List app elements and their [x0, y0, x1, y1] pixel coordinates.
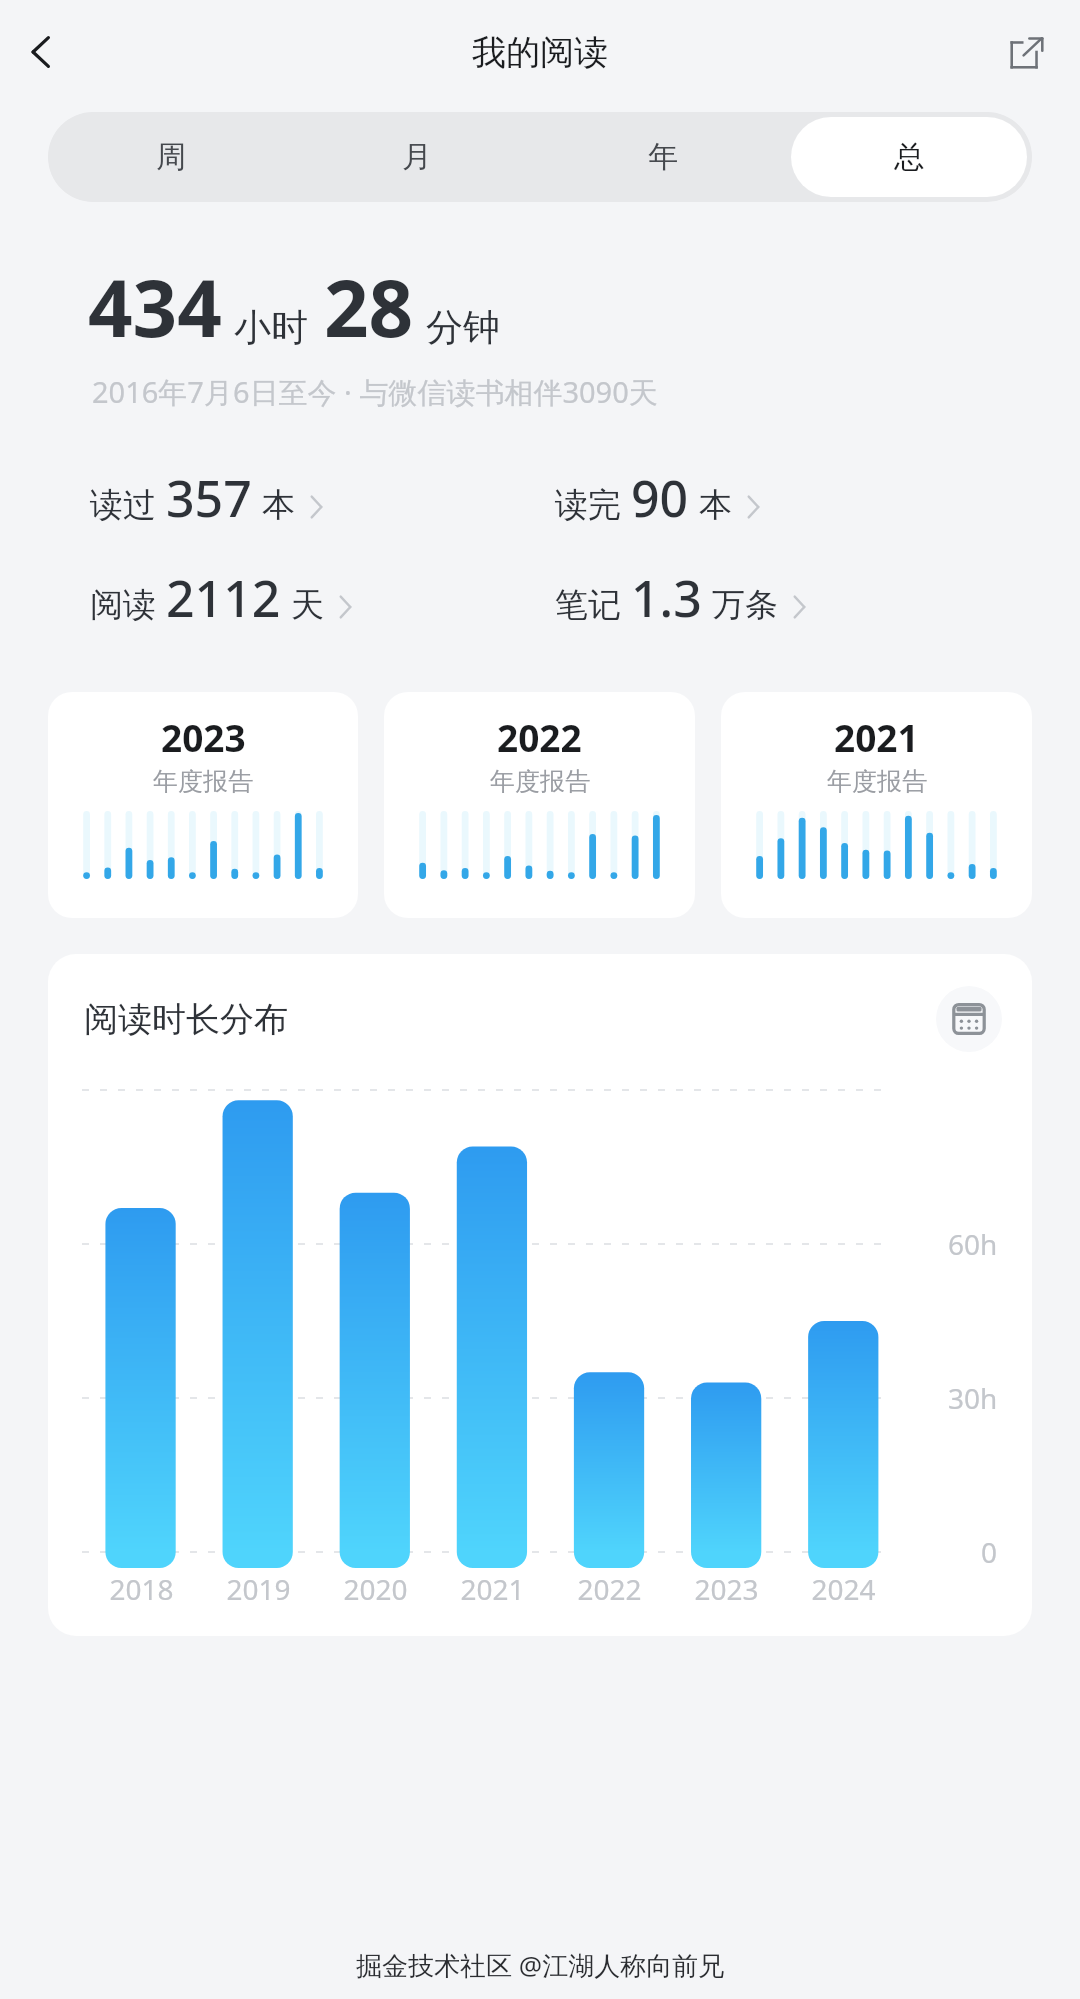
- staticText: 357: [166, 464, 252, 532]
- staticText: 60h: [948, 1225, 998, 1263]
- staticText: 2112: [166, 564, 281, 632]
- staticText: 年度报告: [490, 766, 590, 797]
- staticText: 1.3: [631, 564, 702, 632]
- button[interactable]: 2022: [384, 692, 695, 918]
- button[interactable]: Back: [10, 20, 74, 84]
- staticText: 读过: [90, 484, 156, 526]
- button[interactable]: 读完: [555, 464, 1020, 532]
- button[interactable]: 阅读: [90, 564, 555, 632]
- staticText: 小时: [234, 304, 308, 351]
- staticText: 2023: [161, 712, 246, 762]
- staticText: 月: [402, 138, 432, 176]
- staticText: 本: [262, 484, 295, 526]
- button[interactable]: 总: [791, 117, 1027, 197]
- staticText: 2022: [497, 712, 582, 762]
- staticText: 90: [631, 464, 689, 532]
- staticText: 28: [324, 254, 414, 360]
- staticText: 年度报告: [827, 766, 927, 797]
- button[interactable]: 2023: [48, 692, 358, 918]
- staticText: 2021: [460, 1570, 525, 1608]
- staticText: 434: [88, 254, 222, 360]
- staticText: 2018: [109, 1570, 174, 1608]
- staticText: 2020: [343, 1570, 408, 1608]
- button[interactable]: 2021: [721, 692, 1032, 918]
- staticText: 2024: [811, 1570, 876, 1608]
- staticText: 2021: [834, 712, 919, 762]
- staticText: 2019: [226, 1570, 291, 1608]
- staticText: 阅读时长分布: [84, 998, 288, 1041]
- staticText: 天: [291, 584, 324, 626]
- button[interactable]: Share: [996, 21, 1058, 83]
- staticText: 年: [648, 138, 678, 176]
- button[interactable]: 月: [299, 117, 535, 197]
- button[interactable]: 笔记: [555, 564, 1020, 632]
- staticText: 2022: [577, 1570, 642, 1608]
- button[interactable]: 周: [53, 117, 289, 197]
- button[interactable]: Calendar: [936, 986, 1002, 1052]
- staticText: 总: [894, 138, 924, 176]
- staticText: 读完: [555, 484, 621, 526]
- staticText: 笔记: [555, 584, 621, 626]
- staticText: 本: [699, 484, 732, 526]
- staticText: 周: [156, 138, 186, 176]
- button[interactable]: 年: [545, 117, 781, 197]
- button[interactable]: 读过: [90, 464, 555, 532]
- staticText: 掘金技术社区 @江湖人称向前兄: [356, 1947, 725, 1983]
- staticText: 阅读: [90, 584, 156, 626]
- staticText: 2023: [694, 1570, 759, 1608]
- staticText: 分钟: [426, 304, 500, 351]
- staticText: 2016年7月6日至今 · 与微信读书相伴3090天: [92, 372, 658, 412]
- staticText: 30h: [948, 1379, 998, 1417]
- staticText: 0: [981, 1533, 998, 1571]
- staticText: 万条: [712, 584, 778, 626]
- staticText: 年度报告: [153, 766, 253, 797]
- staticText: 我的阅读: [472, 31, 608, 74]
